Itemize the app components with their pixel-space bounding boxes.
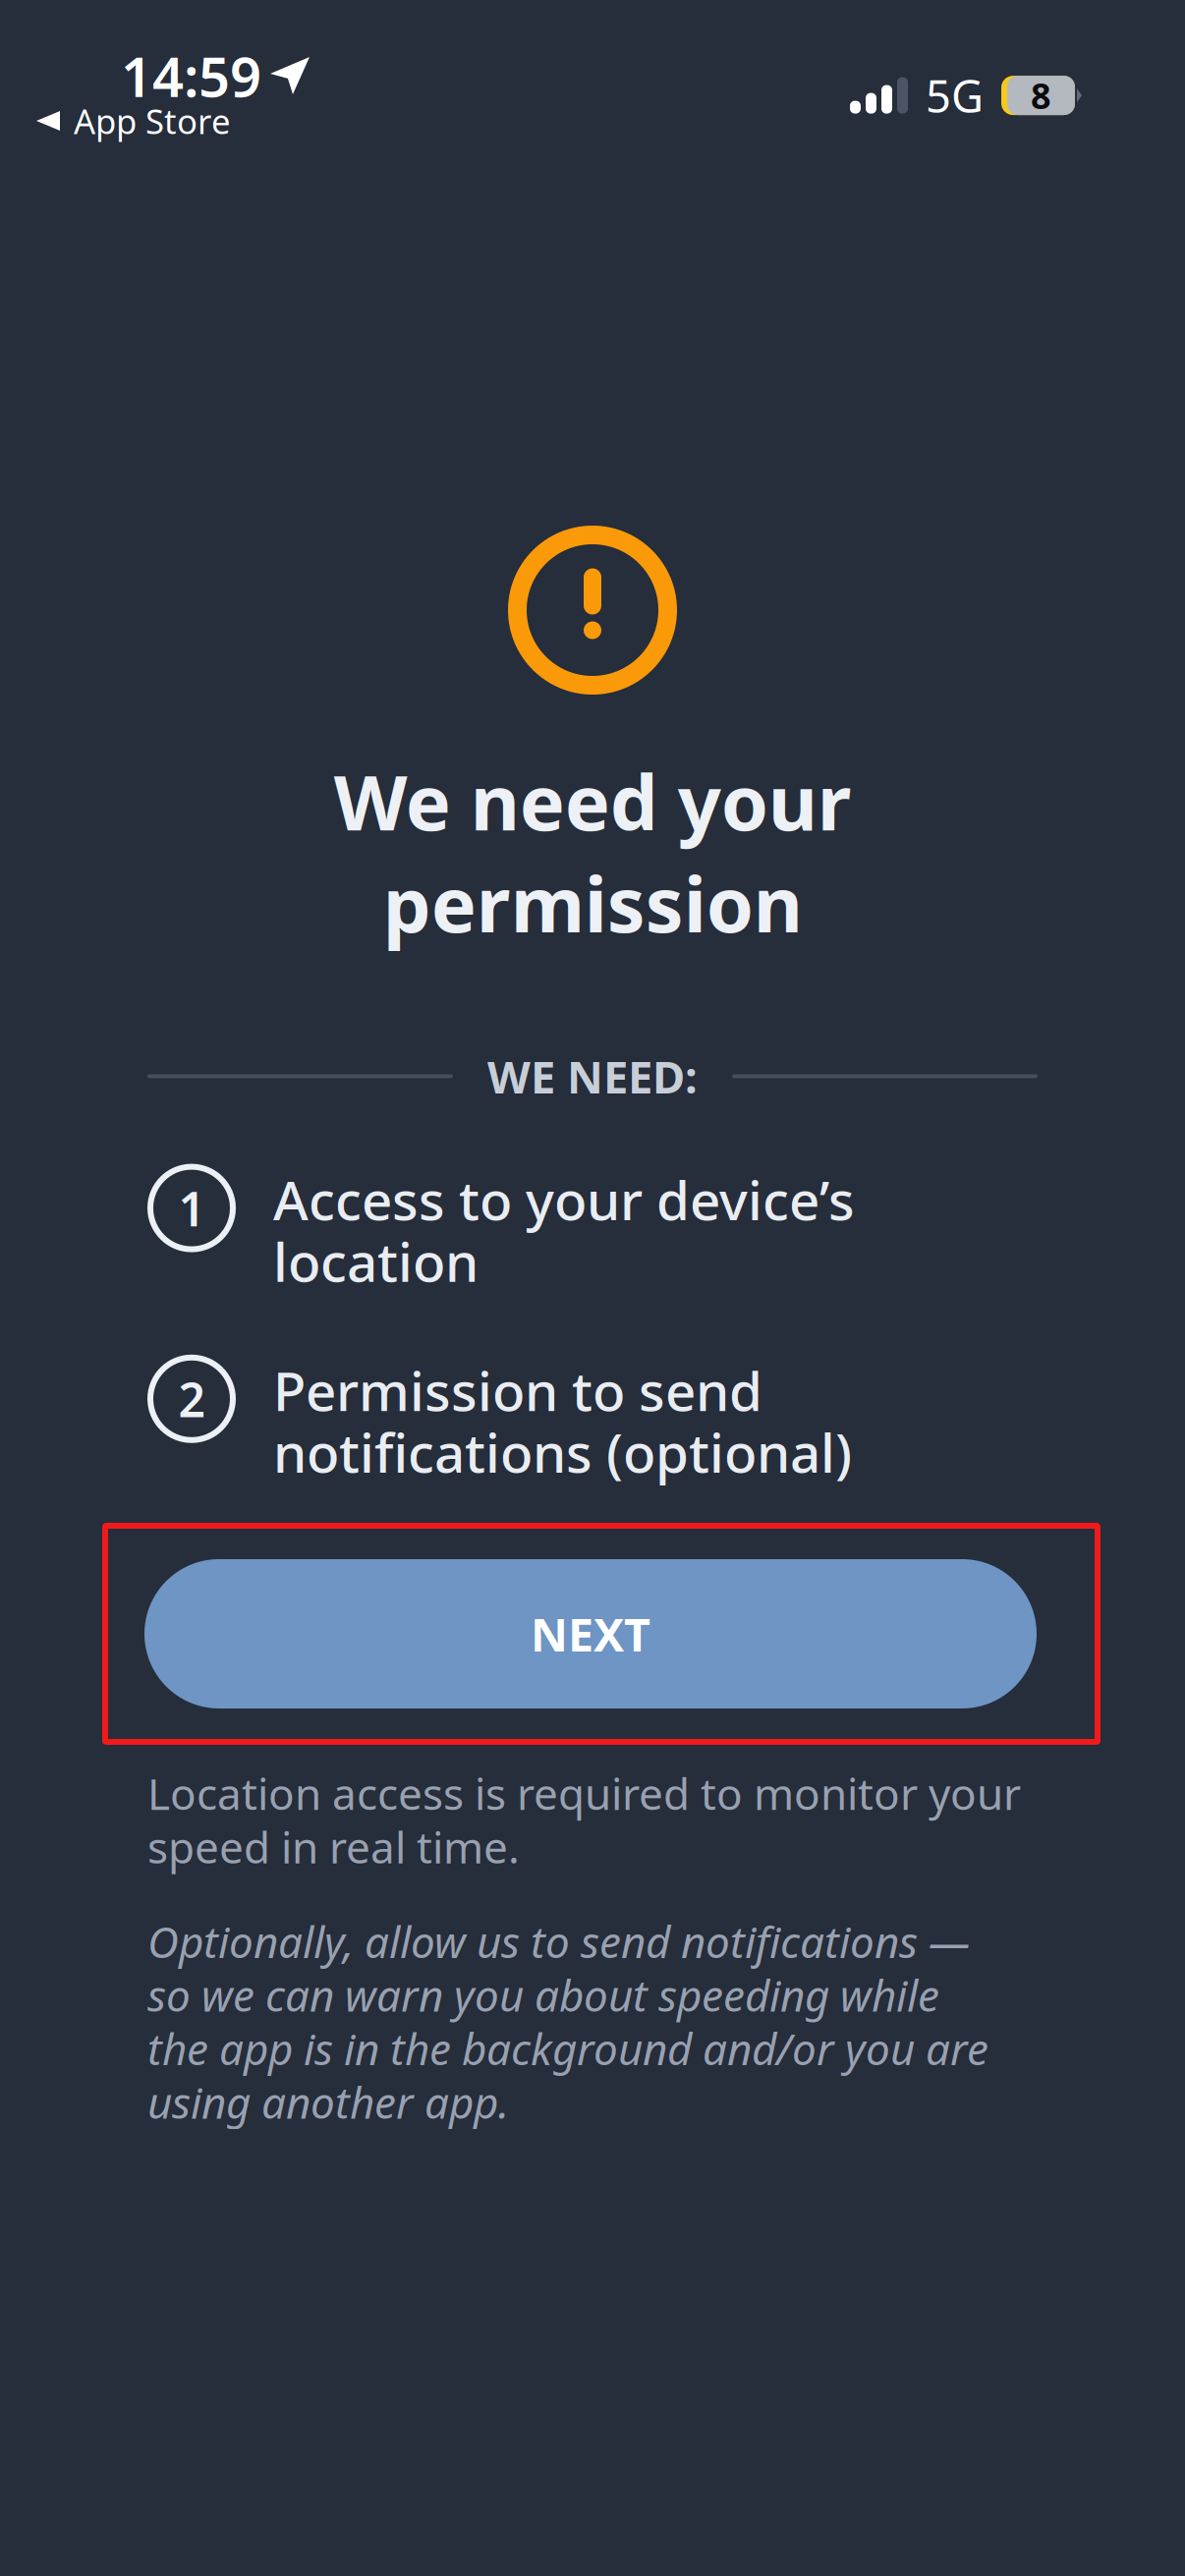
button[interactable]: App Store <box>36 101 231 140</box>
staticText: Optionally, allow us to send notificatio… <box>147 1913 988 2130</box>
staticText: We need your permission <box>334 751 851 953</box>
button[interactable]: NEXT <box>90 1526 1095 1742</box>
staticText: 2 <box>178 1367 205 1430</box>
staticText: 8 <box>1031 72 1051 119</box>
staticText: Access to your device’s location <box>273 1164 855 1297</box>
staticText: NEXT <box>531 1603 650 1664</box>
staticText: 1 <box>178 1177 205 1239</box>
staticText: Permission to send notifications (option… <box>273 1355 852 1487</box>
staticText: Location access is required to monitor y… <box>147 1764 1021 1875</box>
staticText: 14:59 <box>121 39 261 112</box>
staticText: App Store <box>74 98 231 143</box>
staticText: 5G <box>926 66 984 125</box>
staticText: WE NEED: <box>487 1047 698 1106</box>
